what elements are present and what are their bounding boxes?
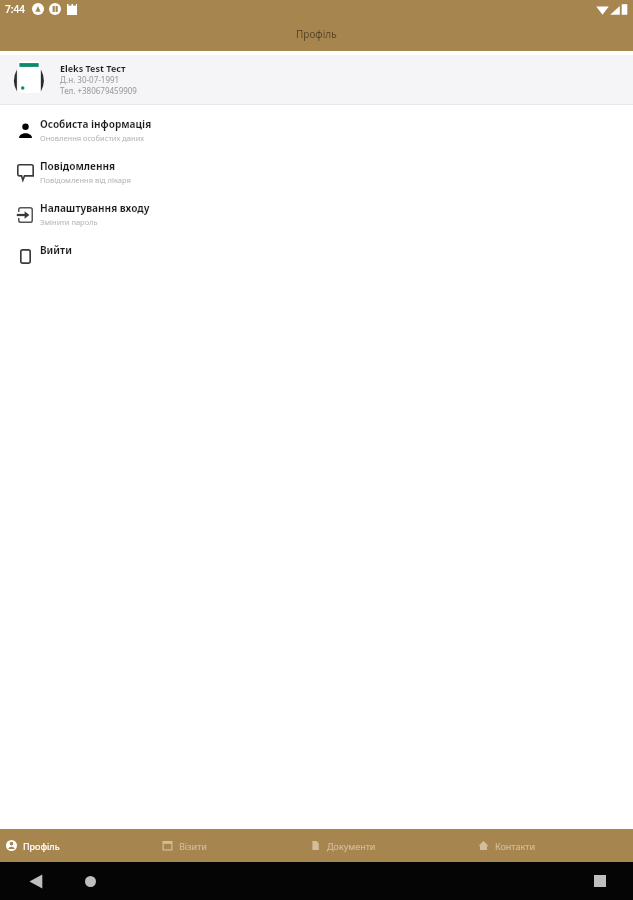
staticText: Налаштування входу xyxy=(40,201,150,215)
button[interactable]: Повідомлення xyxy=(0,151,633,193)
staticText: Особиста інформація xyxy=(40,117,152,131)
staticText: Тел. +380679459909 xyxy=(60,85,137,96)
staticText: Оновлення особистих даних xyxy=(40,133,145,143)
staticText: Профіль xyxy=(23,840,60,852)
staticText: Вийти xyxy=(40,243,72,257)
button[interactable]: Особиста інформація xyxy=(0,109,633,151)
button[interactable]: Контакти xyxy=(472,829,542,862)
staticText: Візити xyxy=(179,840,207,852)
button[interactable]: Recent apps xyxy=(586,867,614,895)
staticText: Документи xyxy=(327,840,376,852)
button[interactable]: Вийти xyxy=(0,235,633,277)
staticText: 7:44 xyxy=(5,2,25,16)
button[interactable]: Back xyxy=(22,867,50,895)
button[interactable]: Профіль xyxy=(0,829,66,862)
staticText: Контакти xyxy=(495,840,536,852)
button[interactable]: Налаштування входу xyxy=(0,193,633,235)
button[interactable]: Візити xyxy=(156,829,213,862)
button[interactable]: Документи xyxy=(304,829,382,862)
staticText: Змінити пароль xyxy=(40,217,98,227)
staticText: Повідомлення від лікаря xyxy=(40,175,131,185)
staticText: Профіль xyxy=(296,27,337,41)
button[interactable]: Home xyxy=(76,867,104,895)
staticText: Eleks Test Тест xyxy=(60,62,126,74)
staticText: Повідомлення xyxy=(40,159,116,173)
staticText: Д.н. 30-07-1991 xyxy=(60,74,120,85)
